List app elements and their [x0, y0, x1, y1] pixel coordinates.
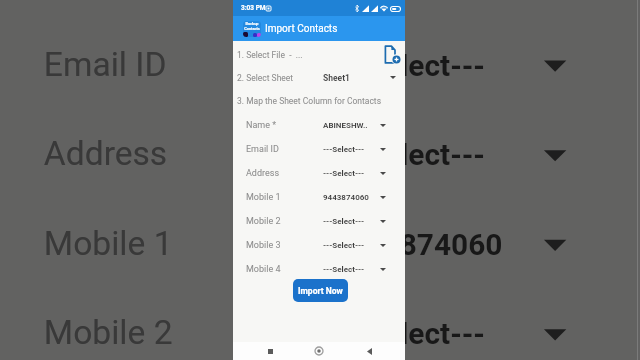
button[interactable]: Email ID — [233, 137, 405, 161]
staticText: ---Select--- — [331, 49, 488, 83]
staticText: Email ID — [246, 144, 279, 155]
staticText: 2. Select Sheet — [237, 73, 294, 83]
staticText: Mobile 3 — [246, 240, 281, 251]
staticText: 3. Map the Sheet Column for Contacts — [237, 96, 382, 106]
staticText: ---Select--- — [323, 169, 365, 178]
staticText: Import Contacts — [265, 23, 338, 35]
button[interactable]: App logo — [243, 21, 261, 37]
button[interactable]: Back — [356, 342, 382, 360]
staticText: Address — [44, 135, 171, 176]
button[interactable]: Name * — [233, 113, 405, 137]
staticText: ---Select--- — [323, 217, 365, 226]
button[interactable]: Home — [306, 342, 332, 360]
staticText: Mobile 2 — [44, 314, 174, 355]
staticText: ---Select--- — [323, 145, 365, 154]
button[interactable]: Address — [233, 161, 405, 185]
button[interactable]: Name * — [0, 0, 637, 20]
staticText: Contacts — [244, 26, 260, 31]
staticText: Email ID — [44, 46, 167, 87]
staticText: 9443874060 — [331, 228, 503, 262]
staticText: Import Now — [298, 286, 343, 296]
button[interactable]: Mobile 1 — [233, 185, 405, 209]
staticText: ---Select--- — [331, 318, 488, 352]
staticText: Mobile 1 — [246, 192, 281, 203]
staticText: ---Select--- — [323, 241, 365, 250]
staticText: Mobile 4 — [246, 264, 281, 275]
button[interactable]: Mobile 4 — [233, 257, 405, 281]
staticText: Backup — [245, 21, 259, 26]
other: Select file — [381, 44, 401, 65]
button[interactable]: 1. Select File - ... — [233, 43, 405, 66]
button[interactable]: Mobile 3 — [233, 233, 405, 257]
staticText: Address — [246, 168, 280, 179]
button[interactable]: Email ID — [0, 19, 637, 109]
button[interactable]: Recents — [257, 342, 283, 360]
button[interactable]: Mobile 2 — [0, 288, 637, 360]
button[interactable]: 2. Select Sheet — [233, 66, 405, 89]
staticText: 1. Select File - ... — [237, 50, 303, 60]
staticText: ---Select--- — [331, 139, 488, 172]
staticText: 3:03 PM — [241, 4, 266, 12]
button[interactable]: Address — [0, 109, 637, 199]
staticText: ABINESHW.. — [323, 121, 368, 130]
staticText: 9443874060 — [323, 193, 369, 202]
button[interactable]: Mobile 1 — [0, 199, 637, 288]
button[interactable]: Import Now — [293, 279, 348, 302]
staticText: Sheet1 — [323, 73, 350, 83]
staticText: Mobile 2 — [246, 216, 281, 227]
staticText: ---Select--- — [323, 265, 365, 274]
button[interactable]: Mobile 2 — [233, 209, 405, 233]
staticText: Mobile 1 — [44, 225, 174, 266]
staticText: Name * — [246, 120, 277, 131]
